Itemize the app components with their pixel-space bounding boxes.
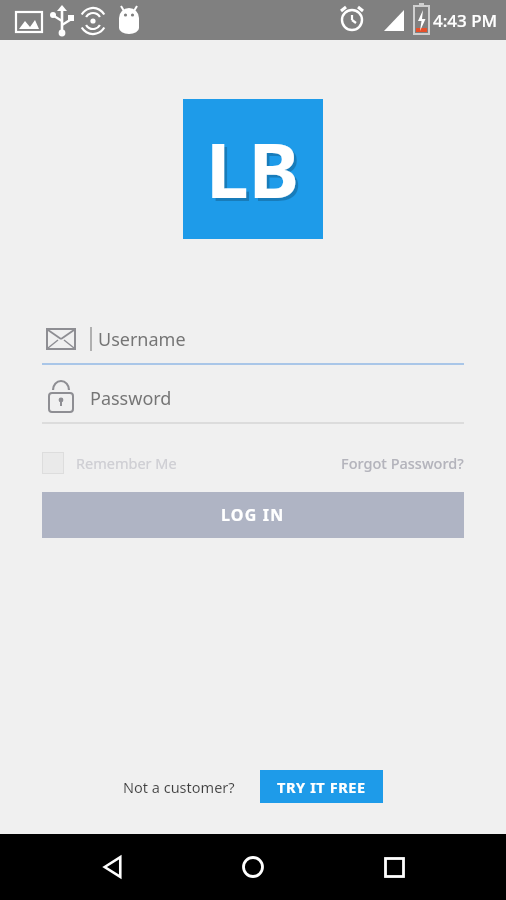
staticText: Remember Me <box>76 453 177 473</box>
button[interactable]: Back <box>85 839 141 895</box>
staticText: LB <box>209 120 303 224</box>
staticText: Forgot Password? <box>341 453 464 473</box>
button[interactable]: Forgot Password? <box>341 449 464 477</box>
button[interactable]: LOG IN <box>42 492 464 538</box>
staticText: Username <box>98 327 186 352</box>
staticText: TRY IT FREE <box>277 777 366 797</box>
staticText: Password <box>90 386 172 411</box>
button[interactable]: Recent apps <box>366 839 422 895</box>
button[interactable]: Remember Me <box>42 450 177 476</box>
button[interactable]: TRY IT FREE <box>260 770 383 803</box>
staticText: LB <box>206 117 300 221</box>
staticText: 4:43 PM <box>433 9 498 32</box>
button[interactable]: Username <box>42 315 464 363</box>
button[interactable]: Password <box>42 374 464 422</box>
staticText: Not a customer? <box>123 777 235 797</box>
staticText: LOG IN <box>221 504 285 526</box>
button[interactable]: Home <box>225 839 281 895</box>
